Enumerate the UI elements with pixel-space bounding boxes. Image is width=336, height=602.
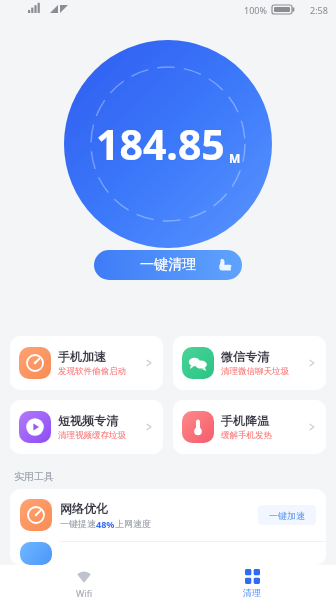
- staticText: 手机加速: [58, 349, 106, 364]
- staticText: 一键清理: [140, 256, 196, 274]
- staticText: 实用工具: [14, 470, 54, 483]
- staticText: M: [229, 150, 241, 166]
- staticText: 48%: [96, 518, 115, 530]
- staticText: 网络优化: [60, 501, 108, 516]
- staticText: 184.85: [96, 116, 225, 172]
- staticText: 上网速度: [115, 518, 151, 529]
- staticText: 微信专清: [221, 349, 269, 364]
- staticText: 发现软件偷偷启动: [58, 366, 126, 377]
- staticText: 缓解手机发热: [221, 430, 272, 441]
- staticText: 清理微信聊天垃圾: [221, 366, 289, 377]
- button[interactable]: 网络优化: [10, 489, 326, 541]
- button[interactable]: 清理: [168, 565, 336, 602]
- button[interactable]: Wifi: [0, 565, 168, 602]
- other: 清理: [245, 569, 260, 584]
- other: Wifi: [76, 569, 92, 585]
- button[interactable]: 微信专清: [173, 336, 326, 390]
- staticText: 短视频专清: [58, 413, 118, 428]
- staticText: 手机降温: [221, 413, 269, 428]
- button[interactable]: 手机降温: [173, 400, 326, 454]
- staticText: 清理: [243, 587, 261, 598]
- button[interactable]: 一键清理: [94, 250, 242, 280]
- button[interactable]: 短视频专清: [10, 400, 163, 454]
- staticText: 一键提速: [60, 518, 96, 529]
- staticText: 一键加速: [269, 510, 305, 521]
- button[interactable]: 手机加速: [10, 336, 163, 390]
- staticText: 2:58: [310, 4, 328, 16]
- button[interactable]: [10, 542, 326, 565]
- staticText: 清理视频缓存垃圾: [58, 430, 126, 441]
- staticText: Wifi: [76, 587, 93, 599]
- staticText: 100%: [244, 4, 267, 16]
- button[interactable]: 一键加速: [258, 505, 316, 525]
